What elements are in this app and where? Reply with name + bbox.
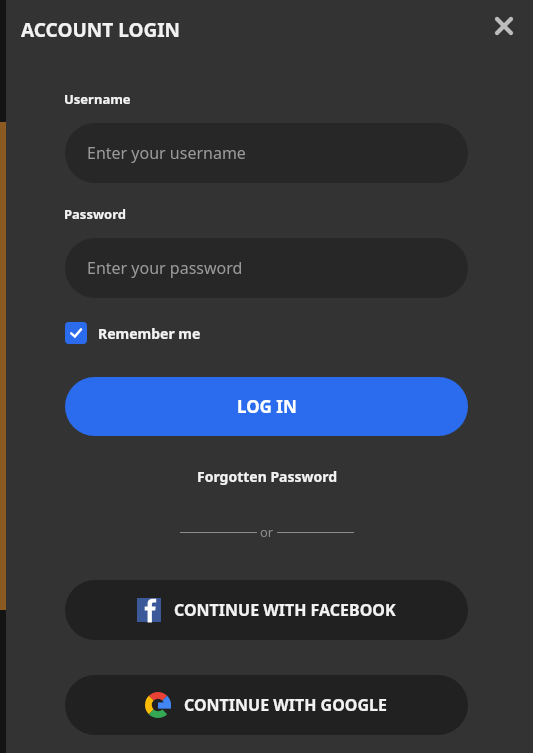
button[interactable]: Forgotten Password bbox=[180, 462, 354, 490]
button[interactable]: CONTINUE WITH GOOGLE bbox=[65, 675, 468, 735]
button[interactable]: CONTINUE WITH FACEBOOK bbox=[65, 580, 468, 640]
staticText: LOG IN bbox=[237, 395, 297, 418]
staticText: CONTINUE WITH FACEBOOK bbox=[174, 599, 396, 621]
staticText: Enter your password bbox=[87, 257, 243, 279]
staticText: ACCOUNT LOGIN bbox=[21, 17, 181, 43]
staticText: Password bbox=[64, 205, 126, 223]
staticText: Forgotten Password bbox=[197, 467, 338, 486]
button[interactable]: Remember me bbox=[61, 318, 201, 348]
staticText: Remember me bbox=[98, 324, 201, 343]
staticText: Username bbox=[64, 90, 131, 108]
button[interactable]: Enter your password bbox=[65, 238, 468, 298]
button[interactable]: Close bbox=[484, 6, 524, 46]
staticText: CONTINUE WITH GOOGLE bbox=[184, 694, 388, 716]
staticText: Enter your username bbox=[87, 142, 246, 164]
staticText: or bbox=[260, 523, 274, 541]
button[interactable]: LOG IN bbox=[65, 377, 468, 436]
button[interactable]: Enter your username bbox=[65, 123, 468, 183]
